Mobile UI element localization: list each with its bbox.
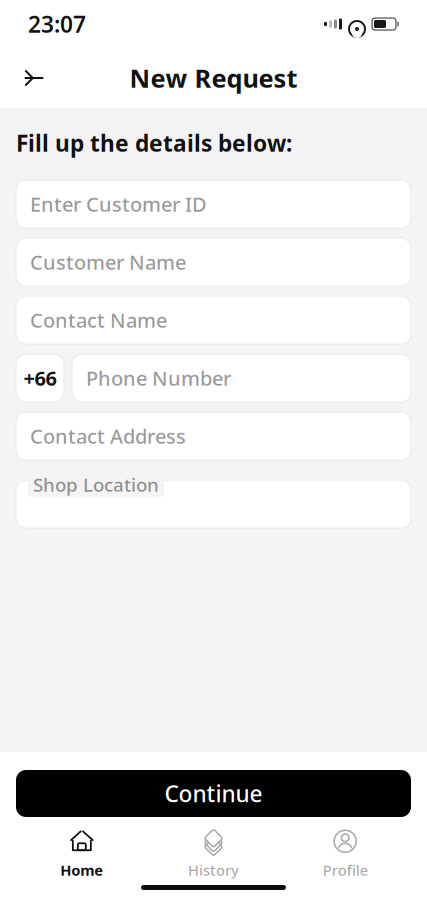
button[interactable]: +66 <box>16 354 64 402</box>
button[interactable]: Continue <box>16 770 411 817</box>
staticText: Phone Number <box>86 365 231 391</box>
staticText: Home <box>60 860 103 880</box>
button[interactable]: Enter Customer ID <box>16 180 411 228</box>
button[interactable]: Shop Location <box>16 472 411 528</box>
button[interactable]: History <box>148 831 279 877</box>
button[interactable]: Contact Name <box>16 296 411 344</box>
button[interactable]: Profile <box>279 831 411 877</box>
staticText: Customer Name <box>30 249 186 275</box>
staticText: Profile <box>323 860 368 880</box>
staticText: Shop Location <box>33 472 159 497</box>
button[interactable]: Contact Address <box>16 412 411 460</box>
button[interactable]: Home <box>16 831 148 877</box>
staticText: 23:07 <box>28 9 86 39</box>
button[interactable]: Phone Number <box>72 354 411 402</box>
staticText: Contact Name <box>30 307 167 333</box>
staticText: +66 <box>23 365 56 391</box>
staticText: Fill up the details below: <box>16 128 292 158</box>
staticText: Continue <box>164 778 262 808</box>
button[interactable]: Customer Name <box>16 238 411 286</box>
button[interactable]: Back <box>12 56 56 100</box>
staticText: Contact Address <box>30 423 186 449</box>
staticText: New Request <box>129 61 297 95</box>
staticText: History <box>188 860 239 880</box>
staticText: Enter Customer ID <box>30 191 207 217</box>
